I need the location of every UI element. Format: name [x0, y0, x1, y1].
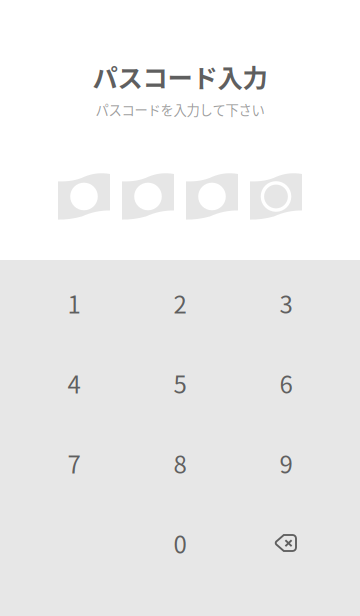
staticText: 5 — [173, 366, 186, 400]
button[interactable]: 7 — [21, 423, 127, 503]
staticText: 1 — [67, 286, 80, 320]
staticText: パスコード入力 — [92, 58, 267, 95]
staticText: 2 — [173, 286, 186, 320]
staticText: 8 — [173, 446, 186, 480]
staticText: 0 — [173, 526, 186, 560]
button[interactable]: 9 — [233, 423, 339, 503]
button[interactable]: 1 — [21, 263, 127, 343]
button[interactable]: 3 — [233, 263, 339, 343]
staticText: パスコードを入力して下さい — [95, 100, 264, 119]
button[interactable]: 2 — [127, 263, 233, 343]
staticText: 7 — [67, 446, 80, 480]
button[interactable]: Delete — [233, 503, 339, 583]
button[interactable]: 5 — [127, 343, 233, 423]
button[interactable]: 0 — [127, 503, 233, 583]
button[interactable]: 4 — [21, 343, 127, 423]
staticText: 3 — [279, 286, 292, 320]
staticText: 6 — [279, 366, 292, 400]
staticText: 9 — [279, 446, 292, 480]
button[interactable]: 6 — [233, 343, 339, 423]
button[interactable]: 8 — [127, 423, 233, 503]
staticText: 4 — [67, 366, 80, 400]
